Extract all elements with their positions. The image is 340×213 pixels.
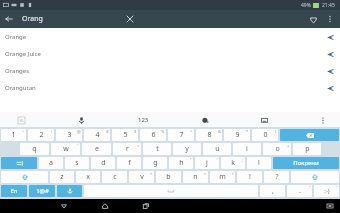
staticText: f (128, 158, 131, 168)
button[interactable]: Keyboard settings (257, 113, 271, 127)
button[interactable]: ? (264, 171, 289, 183)
button[interactable] (280, 129, 339, 141)
button[interactable] (1, 157, 37, 169)
button[interactable]: Keyboard indicator (323, 199, 337, 213)
staticText: c (113, 172, 117, 182)
staticText: j (206, 158, 208, 168)
button[interactable]: d (91, 157, 115, 169)
button[interactable]: l (247, 157, 271, 169)
button[interactable]: ! (237, 171, 262, 183)
button[interactable]: a (39, 157, 63, 169)
staticText: / (232, 171, 234, 176)
button[interactable]: Oranges (0, 62, 340, 79)
button[interactable]: q (20, 143, 49, 155)
button[interactable]: Voice input (74, 113, 88, 127)
button[interactable]: z (50, 171, 74, 183)
button[interactable]: Orangutan (0, 79, 340, 96)
button[interactable]: 2 (28, 129, 54, 141)
button[interactable]: 9 (224, 129, 250, 141)
button[interactable]: x (76, 171, 100, 183)
button[interactable]: e (82, 143, 111, 155)
button[interactable]: Voice typing (57, 185, 82, 197)
button[interactable]: g (143, 157, 167, 169)
button[interactable]: 8 (196, 129, 222, 141)
button[interactable]: Clipboard (14, 113, 28, 127)
button[interactable]: Shift (1, 171, 48, 183)
staticText: , (272, 186, 274, 196)
button[interactable]: Save search (304, 10, 322, 28)
button[interactable]: u (203, 143, 231, 155)
button[interactable]: Orange Juice (0, 45, 340, 62)
button[interactable]: k (221, 157, 245, 169)
staticText: 0 (263, 130, 268, 140)
button[interactable]: 0 (252, 129, 278, 141)
button[interactable]: Stickers (198, 113, 212, 127)
staticText: Orange (5, 33, 27, 41)
button[interactable]: r (113, 143, 141, 155)
button[interactable]: i (233, 143, 261, 155)
button[interactable]: :-) (314, 185, 339, 197)
staticText: + (287, 143, 290, 148)
button[interactable]: Orange (0, 28, 340, 45)
staticText: l (258, 158, 260, 168)
button[interactable]: Hide keyboard (57, 199, 71, 213)
button[interactable]: 1 (1, 129, 26, 141)
button[interactable]: 6 (140, 129, 166, 141)
other: Shift (22, 174, 28, 180)
staticText: Покрени (293, 159, 319, 167)
button[interactable]: Home (98, 199, 112, 213)
staticText: 2 (39, 130, 44, 140)
button[interactable]: t (143, 143, 171, 155)
button[interactable]: . (287, 185, 312, 197)
staticText: s (75, 158, 79, 168)
button[interactable]: o (263, 143, 291, 155)
staticText: @ (77, 129, 81, 134)
staticText: i (246, 144, 248, 154)
button[interactable]: Shift (291, 171, 339, 183)
button[interactable]: More keyboard options (316, 113, 330, 127)
staticText: ; (242, 157, 244, 162)
button[interactable]: b (156, 171, 181, 183)
other: Insert suggestion (322, 46, 338, 62)
staticText: t (156, 144, 159, 154)
button[interactable]: n (183, 171, 208, 183)
staticText: 7 (179, 130, 184, 140)
staticText: w (63, 144, 69, 154)
button[interactable]: h (169, 157, 193, 169)
button[interactable]: Recent apps (139, 199, 153, 213)
staticText: ~ (22, 129, 25, 134)
button[interactable]: p (293, 143, 321, 155)
button[interactable]: y (173, 143, 201, 155)
button[interactable]: , (260, 185, 285, 197)
button[interactable]: Orang (18, 10, 121, 28)
staticText: r (126, 144, 129, 154)
staticText: u (215, 144, 220, 154)
button[interactable]: c (102, 171, 127, 183)
button[interactable]: En (1, 185, 27, 197)
button[interactable]: Покрени (273, 157, 339, 169)
button[interactable]: More options (322, 11, 338, 27)
other: Shift (312, 174, 318, 180)
staticText: Orang (22, 14, 43, 24)
button[interactable]: 3 (56, 129, 82, 141)
button[interactable]: w (51, 143, 80, 155)
button[interactable]: 5 (112, 129, 138, 141)
button[interactable]: v (129, 171, 154, 183)
staticText: m (219, 172, 226, 182)
button[interactable]: 123 (134, 114, 153, 126)
button[interactable]: 1@# (29, 185, 55, 197)
button[interactable]: s (65, 157, 89, 169)
staticText: 1@# (36, 187, 49, 195)
button[interactable]: Back (0, 10, 18, 28)
staticText: 6 (151, 130, 156, 140)
staticText: > (204, 171, 207, 176)
button[interactable]: Clear query (121, 10, 139, 28)
button[interactable]: f (117, 157, 141, 169)
staticText: Oranges (5, 67, 30, 75)
staticText: 3 (67, 130, 72, 140)
button[interactable]: m (210, 171, 235, 183)
button[interactable]: j (195, 157, 219, 169)
button[interactable]: 4 (84, 129, 110, 141)
button[interactable]: 7 (168, 129, 194, 141)
